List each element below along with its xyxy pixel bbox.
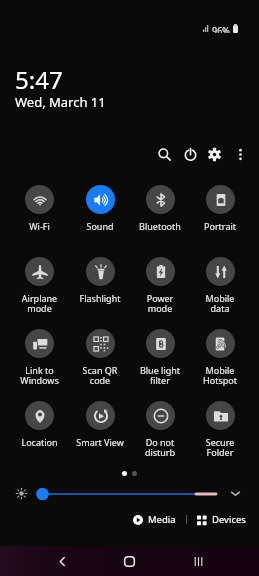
staticText: Mobile data [190,292,250,315]
staticText: Flashlight [70,292,130,304]
button[interactable]: Smart View [70,397,130,469]
staticText: Portrait [190,220,250,232]
button[interactable]: Power mode [130,253,190,325]
button[interactable]: Secure Folder [190,397,250,469]
button[interactable]: Scan QR code [70,325,130,397]
staticText: 5:47 [15,63,63,96]
staticText: Blue light filter [130,364,190,387]
button[interactable]: Wi-Fi [9,181,70,253]
button[interactable]: Airplane mode [9,253,70,325]
button[interactable]: Location [9,397,70,469]
button[interactable]: Back [47,546,77,576]
staticText: Airplane mode [9,292,70,315]
button[interactable]: Home [114,546,144,576]
staticText: Secure Folder [190,436,250,459]
button[interactable]: Devices [193,511,250,528]
button[interactable]: Mobile data [190,253,250,325]
staticText: Wed, March 11 [15,93,106,111]
button[interactable]: Recents [183,546,213,576]
button[interactable]: Sound [70,181,130,253]
button[interactable]: Settings [202,142,226,166]
staticText: Sound [70,220,130,232]
button[interactable]: Search [152,142,176,166]
staticText: Link to Windows [9,364,70,387]
button[interactable]: Brightness [13,485,30,502]
staticText: 96% [212,24,230,33]
staticText: Mobile Hotspot [190,364,250,387]
staticText: Location [9,436,70,448]
button[interactable]: Link to Windows [9,325,70,397]
staticText: Do not disturb [130,436,190,459]
button[interactable]: Mobile Hotspot [190,325,250,397]
button[interactable]: Portrait [190,181,250,253]
staticText: Bluetooth [130,220,190,232]
staticText: Power mode [130,292,190,315]
staticText: Smart View [70,436,130,448]
button[interactable]: Flashlight [70,253,130,325]
button[interactable]: Expand [227,485,244,502]
button[interactable]: Do not disturb [130,397,190,469]
staticText: Devices [212,513,246,526]
staticText: Media [148,513,176,526]
button[interactable]: Bluetooth [130,181,190,253]
button[interactable]: Blue light filter [130,325,190,397]
staticText: Scan QR code [70,364,130,387]
staticText: Wi-Fi [9,220,70,232]
button[interactable]: More options [228,142,252,166]
button[interactable]: Media [129,511,180,528]
button[interactable]: Power [178,142,202,166]
